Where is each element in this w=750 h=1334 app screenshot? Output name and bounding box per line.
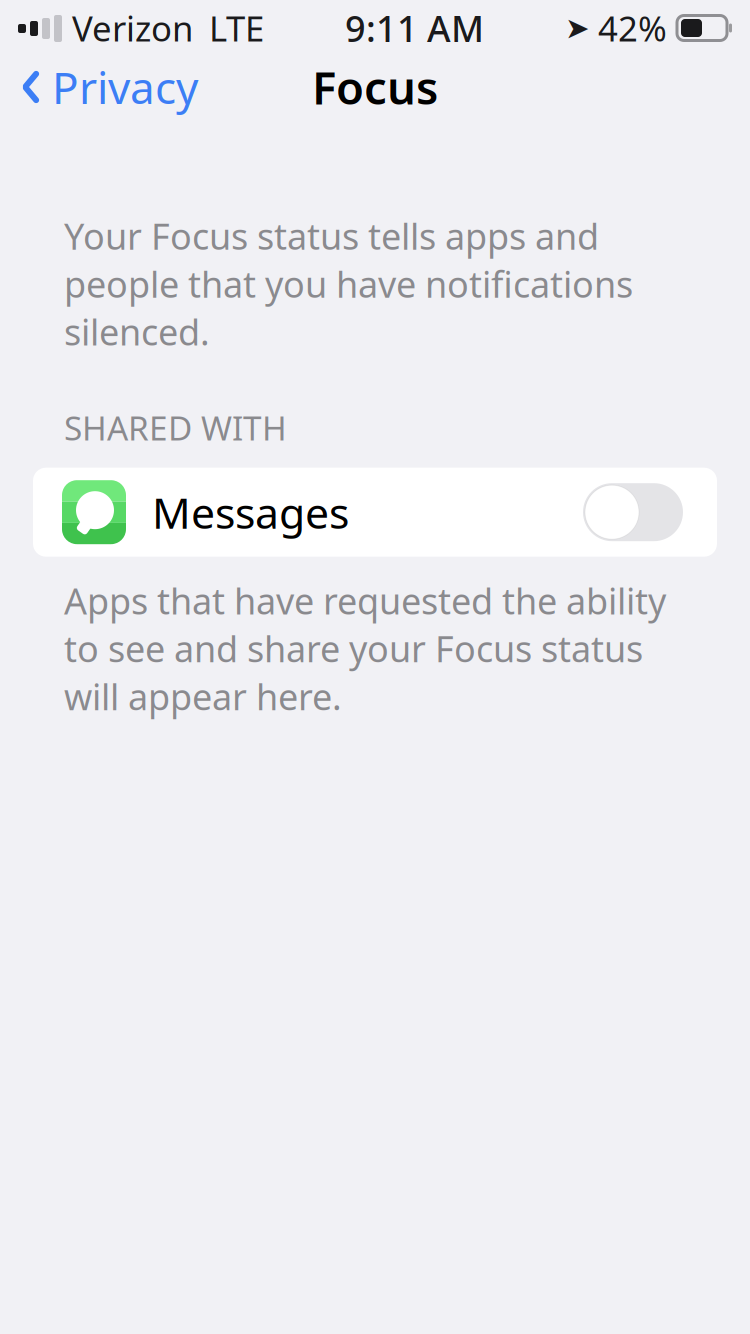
- staticText: Focus: [312, 57, 438, 117]
- staticText: Verizon: [72, 5, 193, 51]
- button[interactable]: Privacy: [0, 50, 198, 124]
- staticText: ➤: [565, 11, 590, 45]
- staticText: SHARED WITH: [64, 405, 287, 450]
- staticText: Messages: [152, 484, 349, 541]
- button[interactable]: Messages: [33, 468, 717, 557]
- staticText: Apps that have requested the ability to …: [64, 577, 666, 720]
- staticText: 9:11 AM: [345, 4, 484, 52]
- staticText: LTE: [209, 5, 264, 51]
- staticText: 42%: [598, 5, 667, 51]
- staticText: Your Focus status tells apps and people …: [64, 212, 633, 355]
- staticText: Privacy: [52, 58, 198, 116]
